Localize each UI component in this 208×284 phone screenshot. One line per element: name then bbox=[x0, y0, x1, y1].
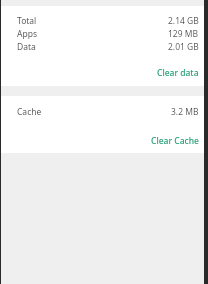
button[interactable]: Data bbox=[0, 40, 208, 53]
button[interactable]: Total bbox=[0, 14, 208, 27]
staticText: 2.01 GB bbox=[168, 41, 199, 53]
staticText: 129 MB bbox=[168, 28, 199, 40]
staticText: Apps bbox=[17, 28, 37, 40]
button[interactable]: Clear data bbox=[148, 63, 208, 83]
staticText: Data bbox=[17, 41, 36, 53]
button[interactable]: Clear Cache bbox=[142, 131, 208, 151]
staticText: Clear Cache bbox=[151, 135, 199, 147]
staticText: Total bbox=[17, 15, 37, 27]
staticText: 2.14 GB bbox=[168, 15, 199, 27]
staticText: Cache bbox=[17, 106, 42, 118]
staticText: Clear data bbox=[157, 67, 199, 79]
button[interactable]: Apps bbox=[0, 27, 208, 40]
staticText: 3.2 MB bbox=[171, 106, 199, 118]
button[interactable]: Cache bbox=[0, 105, 208, 118]
